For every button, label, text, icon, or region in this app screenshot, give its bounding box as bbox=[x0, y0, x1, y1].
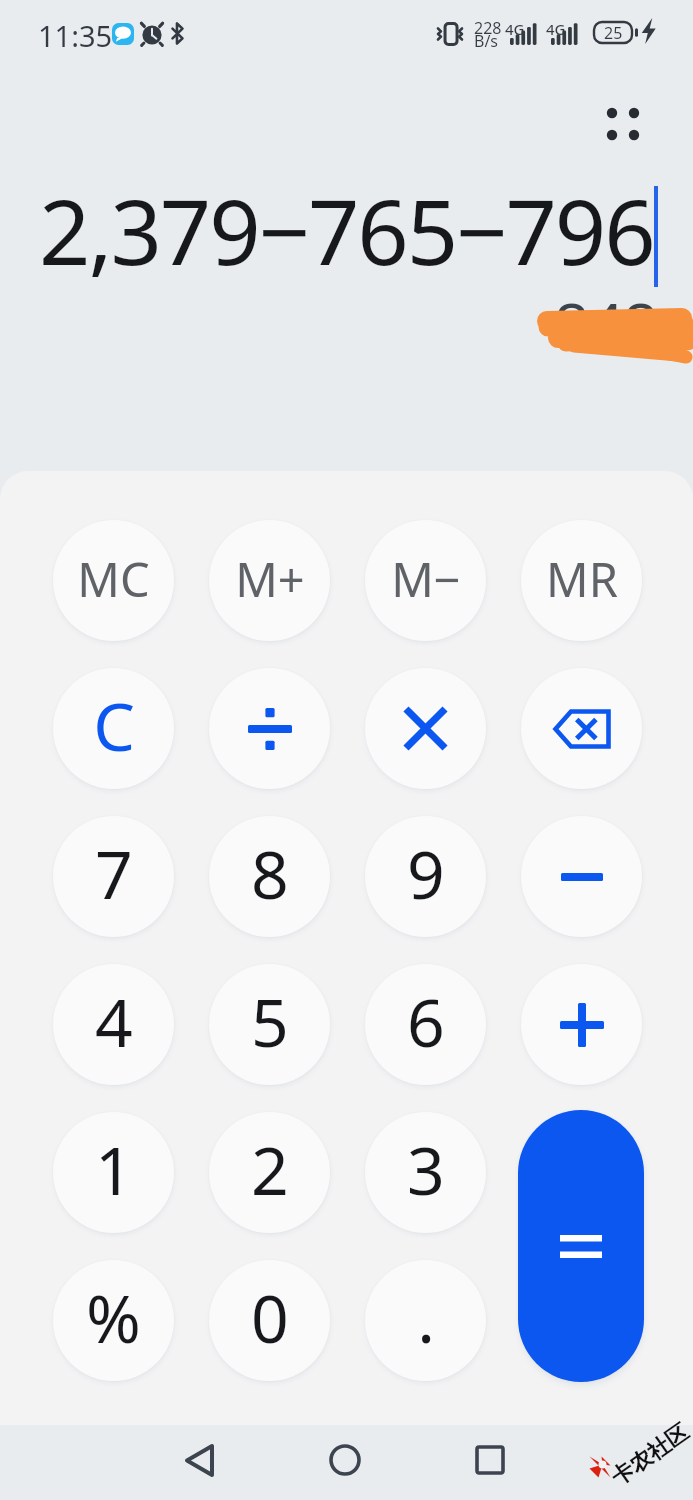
button[interactable]: Decimal point bbox=[365, 1260, 486, 1381]
button[interactable]: Plus bbox=[521, 964, 642, 1085]
staticText: 8 bbox=[251, 828, 289, 918]
button[interactable]: Percent bbox=[53, 1260, 174, 1381]
staticText: 0 bbox=[251, 1272, 289, 1362]
staticText: MR bbox=[546, 547, 618, 611]
staticText: 2 bbox=[251, 1124, 289, 1214]
staticText: 1 bbox=[95, 1124, 133, 1214]
staticText: 4G bbox=[546, 19, 566, 39]
staticText: 9 bbox=[407, 828, 445, 918]
button[interactable]: 3 bbox=[365, 1112, 486, 1233]
button[interactable]: Multiply bbox=[365, 668, 486, 789]
button[interactable]: Memory recall bbox=[521, 520, 642, 641]
staticText: 7 bbox=[95, 828, 133, 918]
button[interactable]: 6 bbox=[365, 964, 486, 1085]
button[interactable]: 1 bbox=[53, 1112, 174, 1233]
button[interactable]: Back bbox=[164, 1425, 234, 1495]
button[interactable]: Backspace bbox=[521, 668, 642, 789]
button[interactable]: Clear bbox=[53, 668, 174, 789]
staticText: % bbox=[86, 1272, 141, 1362]
button[interactable]: 4 bbox=[53, 964, 174, 1085]
button[interactable]: 2 bbox=[209, 1112, 330, 1233]
staticText: 5 bbox=[251, 976, 289, 1066]
staticText: 4 bbox=[95, 976, 133, 1066]
staticText: 25 bbox=[604, 22, 623, 44]
button[interactable]: Divide bbox=[209, 668, 330, 789]
button[interactable]: 9 bbox=[365, 816, 486, 937]
staticText: 2,379−765−796 bbox=[39, 169, 654, 285]
staticText: MC bbox=[77, 547, 150, 611]
staticText: B/s bbox=[474, 30, 499, 52]
staticText: 3 bbox=[407, 1124, 445, 1214]
button[interactable]: More options bbox=[586, 87, 660, 161]
button[interactable]: Memory add bbox=[209, 520, 330, 641]
staticText: M+ bbox=[235, 547, 305, 611]
staticText: 228 bbox=[474, 17, 502, 39]
staticText: 4G bbox=[505, 19, 525, 39]
staticText: 848 bbox=[554, 282, 658, 362]
button[interactable]: Home bbox=[310, 1425, 380, 1495]
button[interactable]: Memory clear bbox=[53, 520, 174, 641]
button[interactable]: 5 bbox=[209, 964, 330, 1085]
button[interactable]: Recents bbox=[455, 1425, 525, 1495]
staticText: M− bbox=[391, 547, 461, 611]
staticText: . bbox=[417, 1272, 435, 1362]
button[interactable]: Memory subtract bbox=[365, 520, 486, 641]
button[interactable]: 0 bbox=[209, 1260, 330, 1381]
staticText: 11:35 bbox=[38, 16, 113, 55]
button[interactable]: Minus bbox=[521, 816, 642, 937]
button[interactable]: Equals bbox=[518, 1110, 644, 1382]
staticText: C bbox=[93, 680, 135, 770]
staticText: 卡农社区 bbox=[606, 1418, 693, 1492]
button[interactable]: 8 bbox=[209, 816, 330, 937]
button[interactable]: 7 bbox=[53, 816, 174, 937]
staticText: 6 bbox=[407, 976, 445, 1066]
